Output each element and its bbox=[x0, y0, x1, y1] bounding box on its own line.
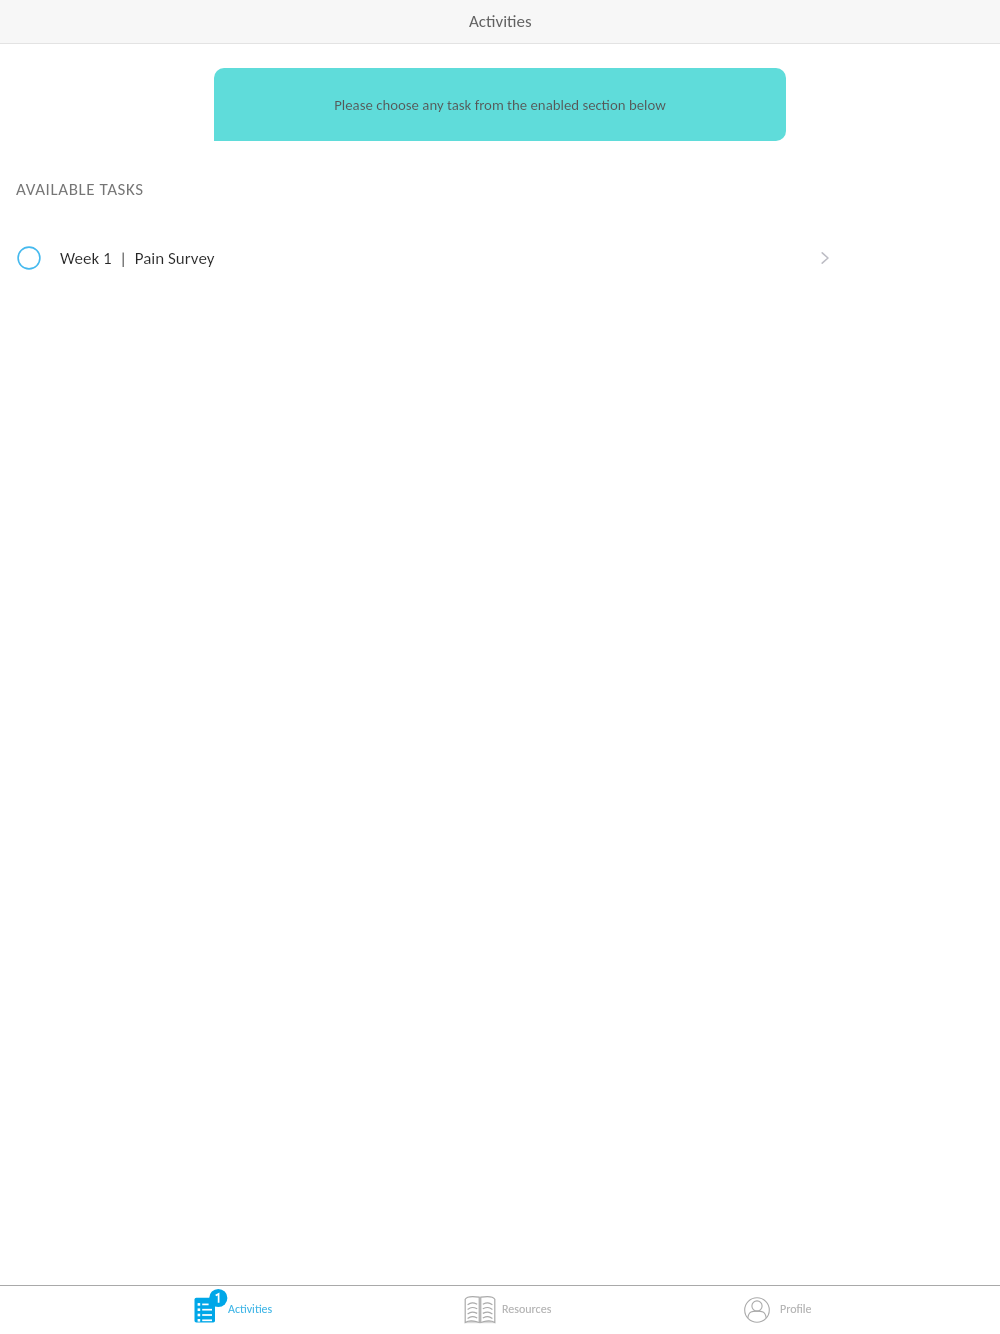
staticText: Profile bbox=[780, 1302, 812, 1317]
button[interactable]: Activities, 1 new bbox=[0, 1286, 334, 1334]
button[interactable]: Profile bbox=[667, 1286, 1000, 1334]
staticText: AVAILABLE TASKS bbox=[16, 179, 144, 200]
staticText: Resources bbox=[502, 1302, 552, 1317]
other: Open task bbox=[820, 251, 834, 265]
button[interactable]: Resources bbox=[334, 1286, 667, 1334]
staticText: Week 1 | Pain Survey bbox=[60, 248, 215, 269]
staticText: Please choose any task from the enabled … bbox=[334, 96, 666, 114]
staticText: Activities bbox=[469, 11, 532, 32]
button[interactable]: Week 1 | Pain Survey bbox=[0, 234, 1000, 282]
staticText: Activities bbox=[228, 1302, 273, 1317]
